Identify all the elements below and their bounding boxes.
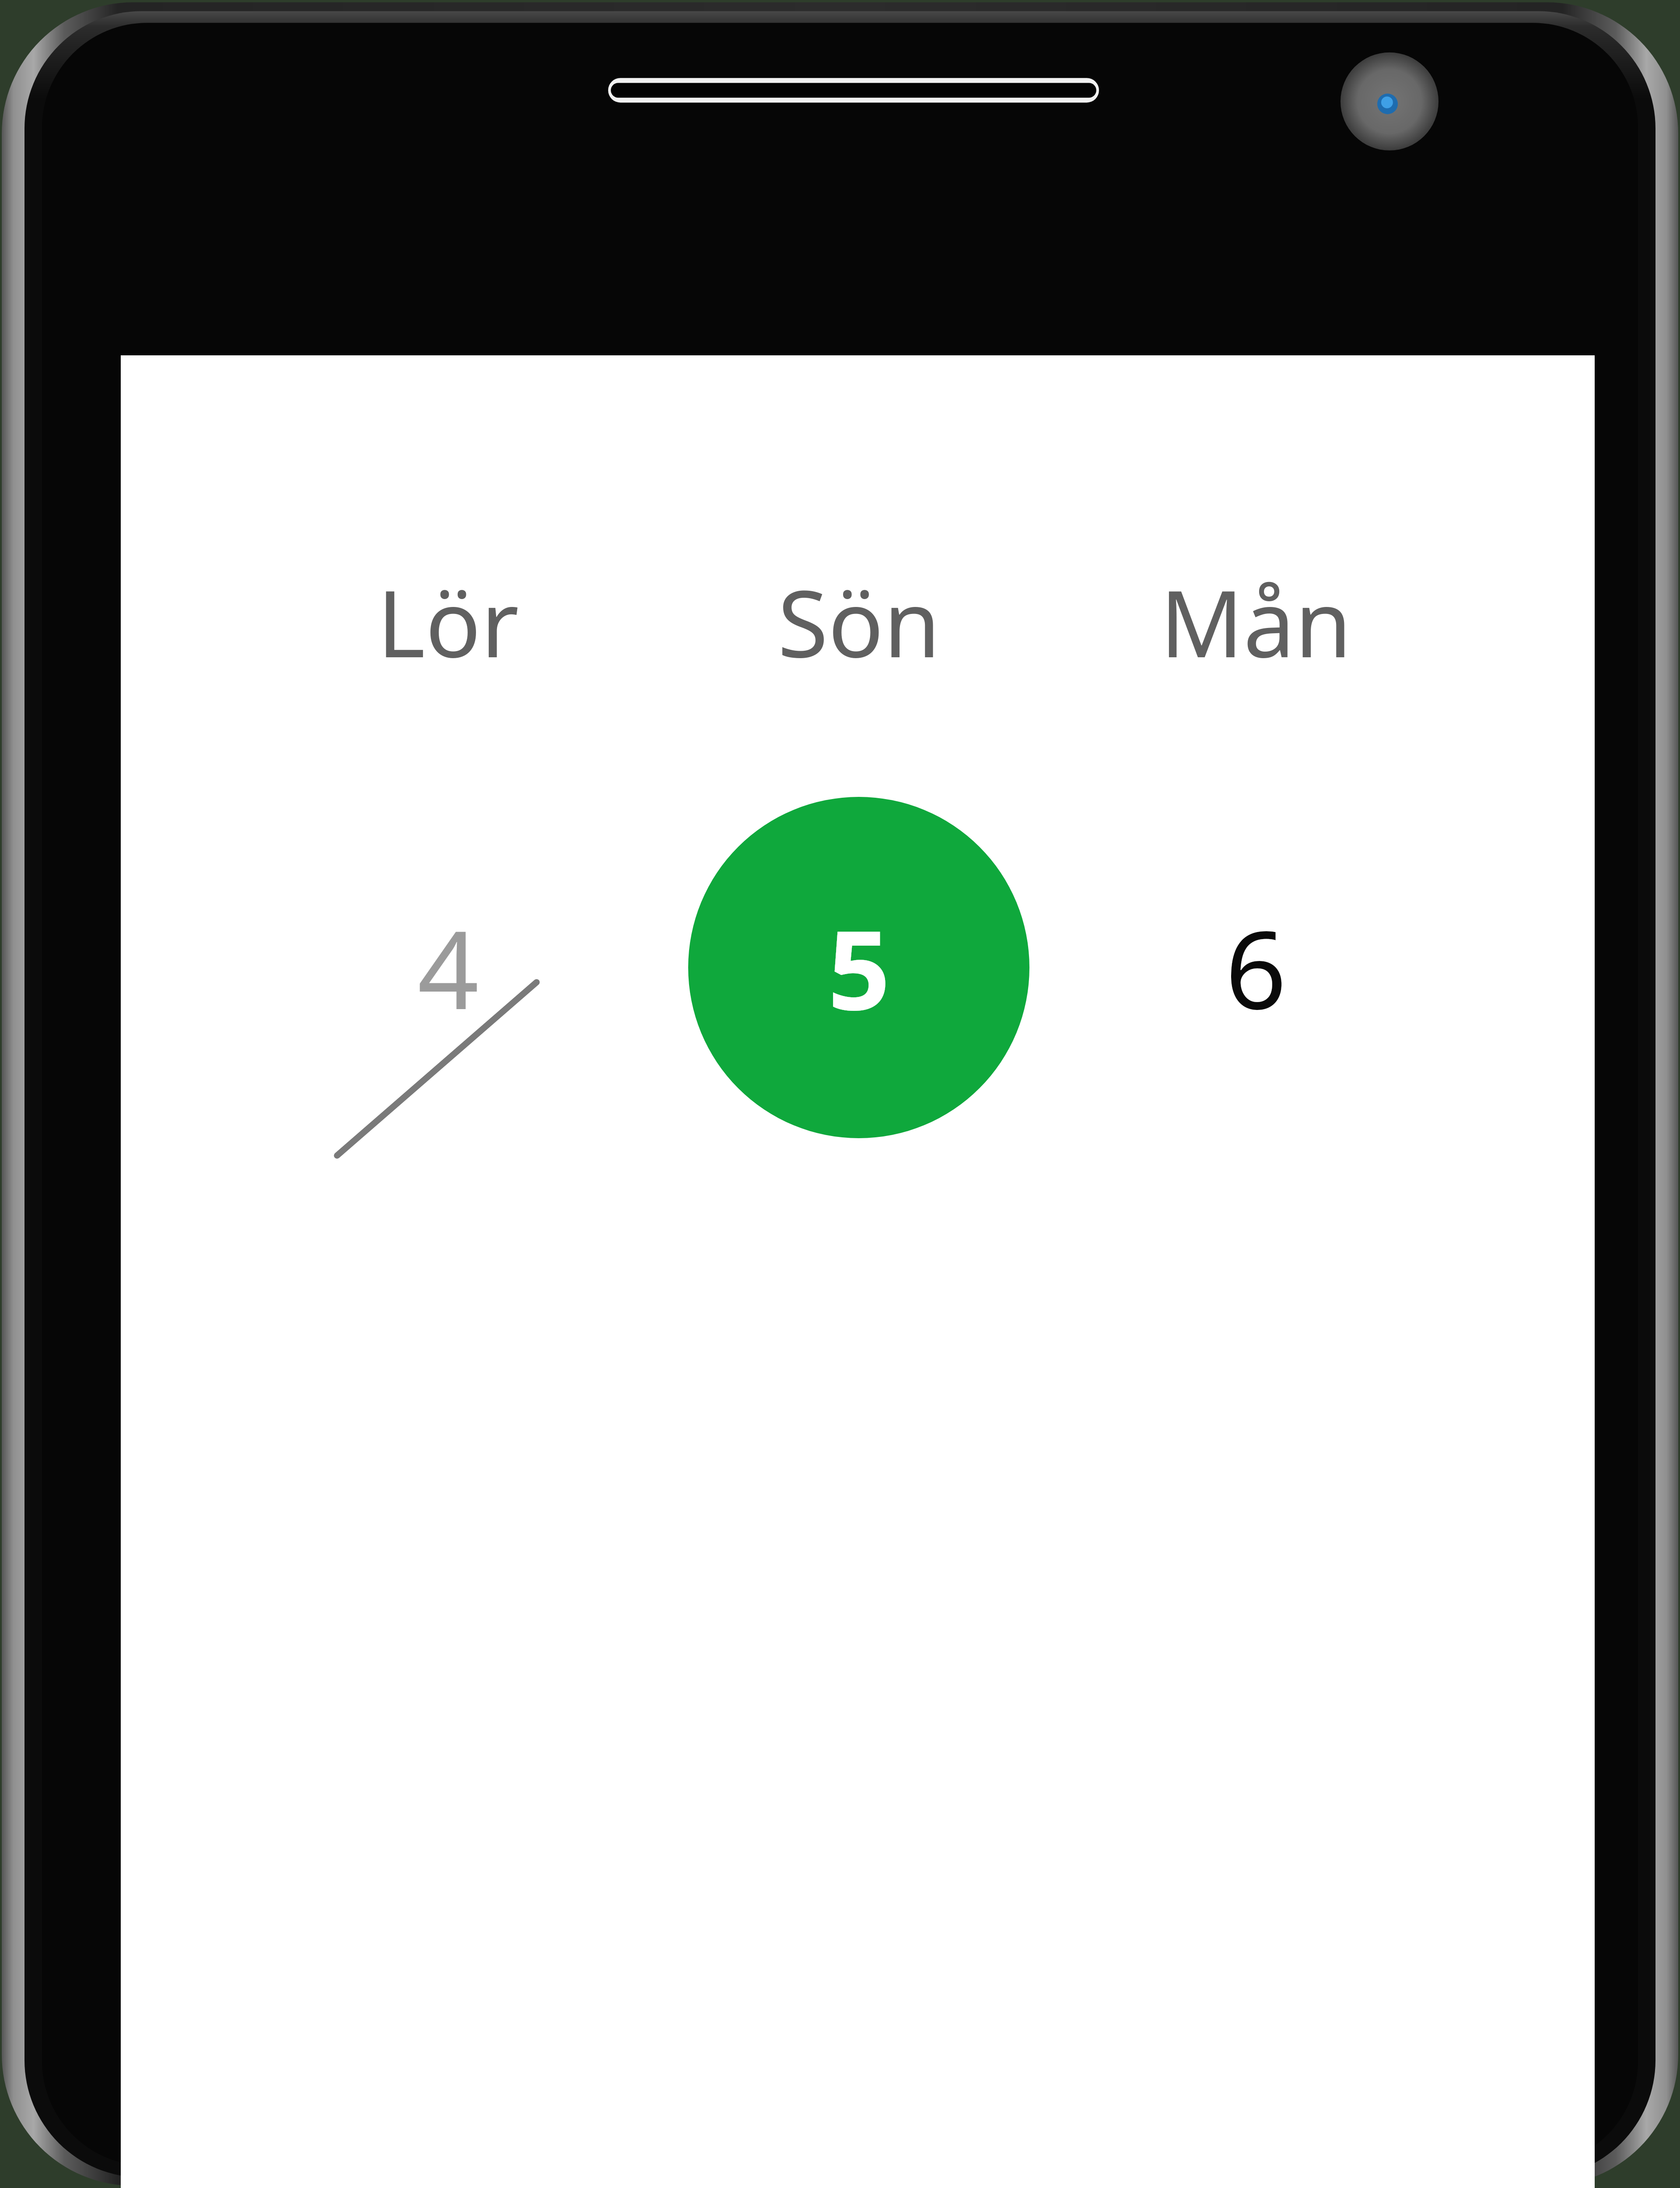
- button[interactable]: Today, Sunday 5: [688, 797, 1029, 1138]
- staticText: 5: [828, 893, 890, 1042]
- button[interactable]: Mån: [1098, 559, 1413, 686]
- button[interactable]: Sön: [701, 559, 1016, 686]
- staticText: Lör: [377, 559, 519, 684]
- button[interactable]: Saturday 4, past: [325, 876, 570, 1059]
- staticText: 6: [1225, 894, 1287, 1041]
- staticText: Sön: [777, 559, 941, 684]
- button[interactable]: Monday 6: [1133, 876, 1378, 1059]
- staticText: 4: [417, 894, 479, 1041]
- staticText: Mån: [1160, 559, 1352, 684]
- button[interactable]: Lör: [290, 559, 605, 686]
